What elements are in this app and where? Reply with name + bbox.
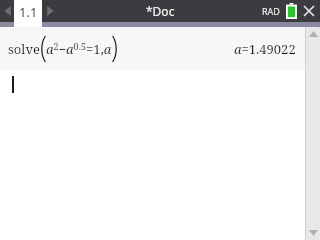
staticText: RAD	[262, 5, 280, 17]
button[interactable]	[0, 70, 320, 98]
staticText: 1.1	[19, 3, 38, 21]
button[interactable]: 1.1	[14, 0, 42, 27]
staticText: a2−a0.5=1,a	[46, 40, 112, 58]
staticText: *Doc	[146, 3, 175, 19]
button[interactable]: Next page	[44, 0, 56, 22]
staticText: solve	[8, 40, 40, 58]
button[interactable]: Battery	[284, 0, 298, 22]
button[interactable]: solve	[0, 27, 320, 70]
button[interactable]: Close	[301, 0, 317, 22]
button[interactable]: Scroll	[306, 27, 320, 240]
button[interactable]: Previous page	[2, 0, 14, 22]
staticText: a=1.49022	[234, 40, 296, 58]
